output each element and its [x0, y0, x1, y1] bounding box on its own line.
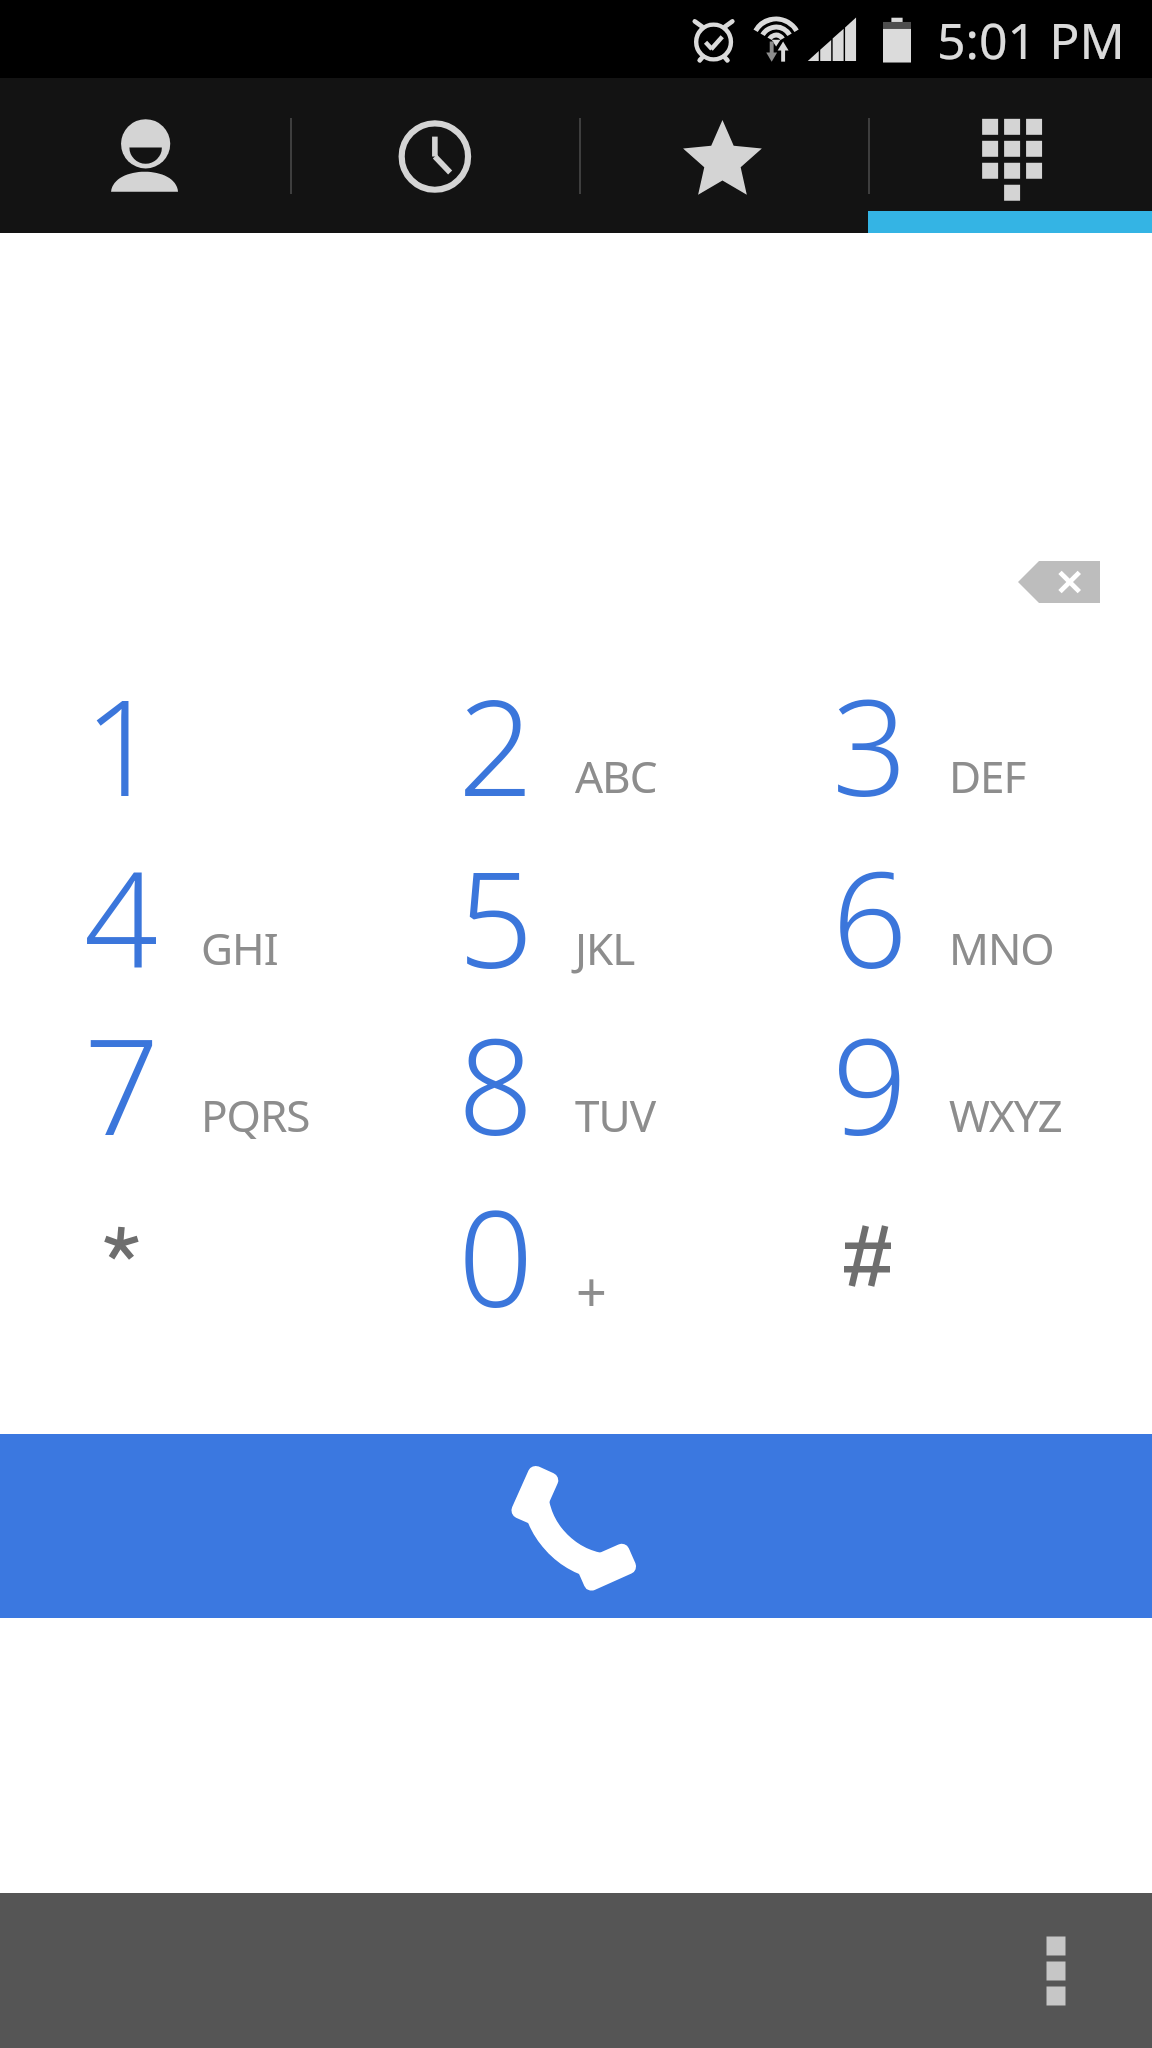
staticText: 3 [832, 655, 904, 825]
button[interactable]: Contacts [0, 78, 288, 233]
staticText: 5:01 PM [937, 6, 1125, 74]
staticText: 1 [84, 655, 156, 825]
staticText: ABC [575, 746, 657, 806]
staticText: 2 [458, 655, 530, 825]
staticText: GHI [201, 918, 278, 978]
button[interactable]: Call history [288, 78, 576, 233]
button[interactable]: More options [1020, 1935, 1092, 2007]
button[interactable]: Star [84, 1166, 458, 1336]
staticText: 8 [458, 994, 530, 1164]
button[interactable]: 4 [84, 827, 458, 997]
staticText: PQRS [201, 1085, 310, 1145]
button[interactable]: Dialpad [864, 78, 1152, 233]
staticText: DEF [949, 746, 1026, 806]
button[interactable]: Pound [832, 1166, 1152, 1336]
button[interactable]: 1 [84, 655, 458, 825]
staticText: 9 [832, 994, 904, 1164]
staticText: 6 [832, 827, 904, 997]
staticText: 4 [84, 827, 156, 997]
button[interactable]: 2 [458, 655, 832, 825]
button[interactable]: 9 [832, 994, 1152, 1164]
button[interactable]: 8 [458, 994, 832, 1164]
staticText: JKL [575, 918, 635, 978]
staticText: MNO [949, 918, 1054, 978]
staticText: 7 [84, 994, 156, 1164]
button[interactable]: Call [0, 1434, 1152, 1618]
button[interactable]: 0 [458, 1166, 832, 1336]
button[interactable]: Favorites [576, 78, 864, 233]
button[interactable]: 5 [458, 827, 832, 997]
button[interactable]: 6 [832, 827, 1152, 997]
button[interactable]: 7 [84, 994, 458, 1164]
staticText: TUV [575, 1085, 656, 1145]
button[interactable]: 3 [832, 655, 1152, 825]
staticText: WXYZ [949, 1085, 1062, 1145]
staticText: 5 [458, 827, 530, 997]
button[interactable]: Backspace [1018, 561, 1100, 603]
staticText: 0 [458, 1166, 530, 1336]
staticText: + [576, 1254, 607, 1328]
